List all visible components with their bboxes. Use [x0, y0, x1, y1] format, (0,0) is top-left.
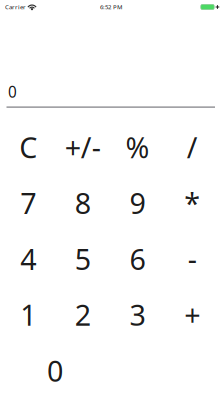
staticText: 4 — [20, 239, 36, 278]
button[interactable]: Minus — [165, 231, 220, 287]
button[interactable]: 7 — [1, 175, 55, 231]
staticText: 5 — [75, 239, 91, 278]
staticText: + — [184, 295, 200, 334]
staticText: 8 — [75, 183, 91, 222]
staticText: % — [126, 127, 150, 166]
staticText: * — [184, 183, 200, 222]
button[interactable]: Multiply — [165, 175, 220, 231]
staticText: - — [188, 239, 197, 278]
button[interactable]: Clear — [1, 119, 55, 175]
button[interactable]: 1 — [1, 287, 55, 343]
button[interactable]: Plus — [165, 287, 220, 343]
button[interactable]: 9 — [110, 175, 165, 231]
button[interactable]: Divide — [165, 119, 220, 175]
staticText: 1 — [20, 295, 36, 334]
staticText: 0 — [47, 351, 63, 390]
button[interactable]: 5 — [55, 231, 110, 287]
button[interactable]: Display — [6, 81, 215, 108]
button[interactable]: Plus minus — [55, 119, 110, 175]
staticText: Carrier — [5, 3, 26, 11]
button[interactable]: 2 — [55, 287, 110, 343]
staticText: 6 — [130, 239, 146, 278]
staticText: 2 — [75, 295, 91, 334]
staticText: 7 — [20, 183, 36, 222]
button[interactable]: 6 — [110, 231, 165, 287]
staticText: 3 — [130, 295, 146, 334]
button[interactable]: 4 — [1, 231, 55, 287]
staticText: +/- — [65, 127, 101, 166]
staticText: 6:52 PM — [100, 3, 123, 11]
button[interactable]: Percent — [110, 119, 165, 175]
button[interactable]: 3 — [110, 287, 165, 343]
staticText: C — [19, 127, 37, 166]
staticText: 0 — [8, 81, 17, 102]
staticText: 9 — [130, 183, 146, 222]
button[interactable]: 8 — [55, 175, 110, 231]
button[interactable]: 0 — [0, 343, 108, 399]
staticText: / — [187, 127, 198, 166]
